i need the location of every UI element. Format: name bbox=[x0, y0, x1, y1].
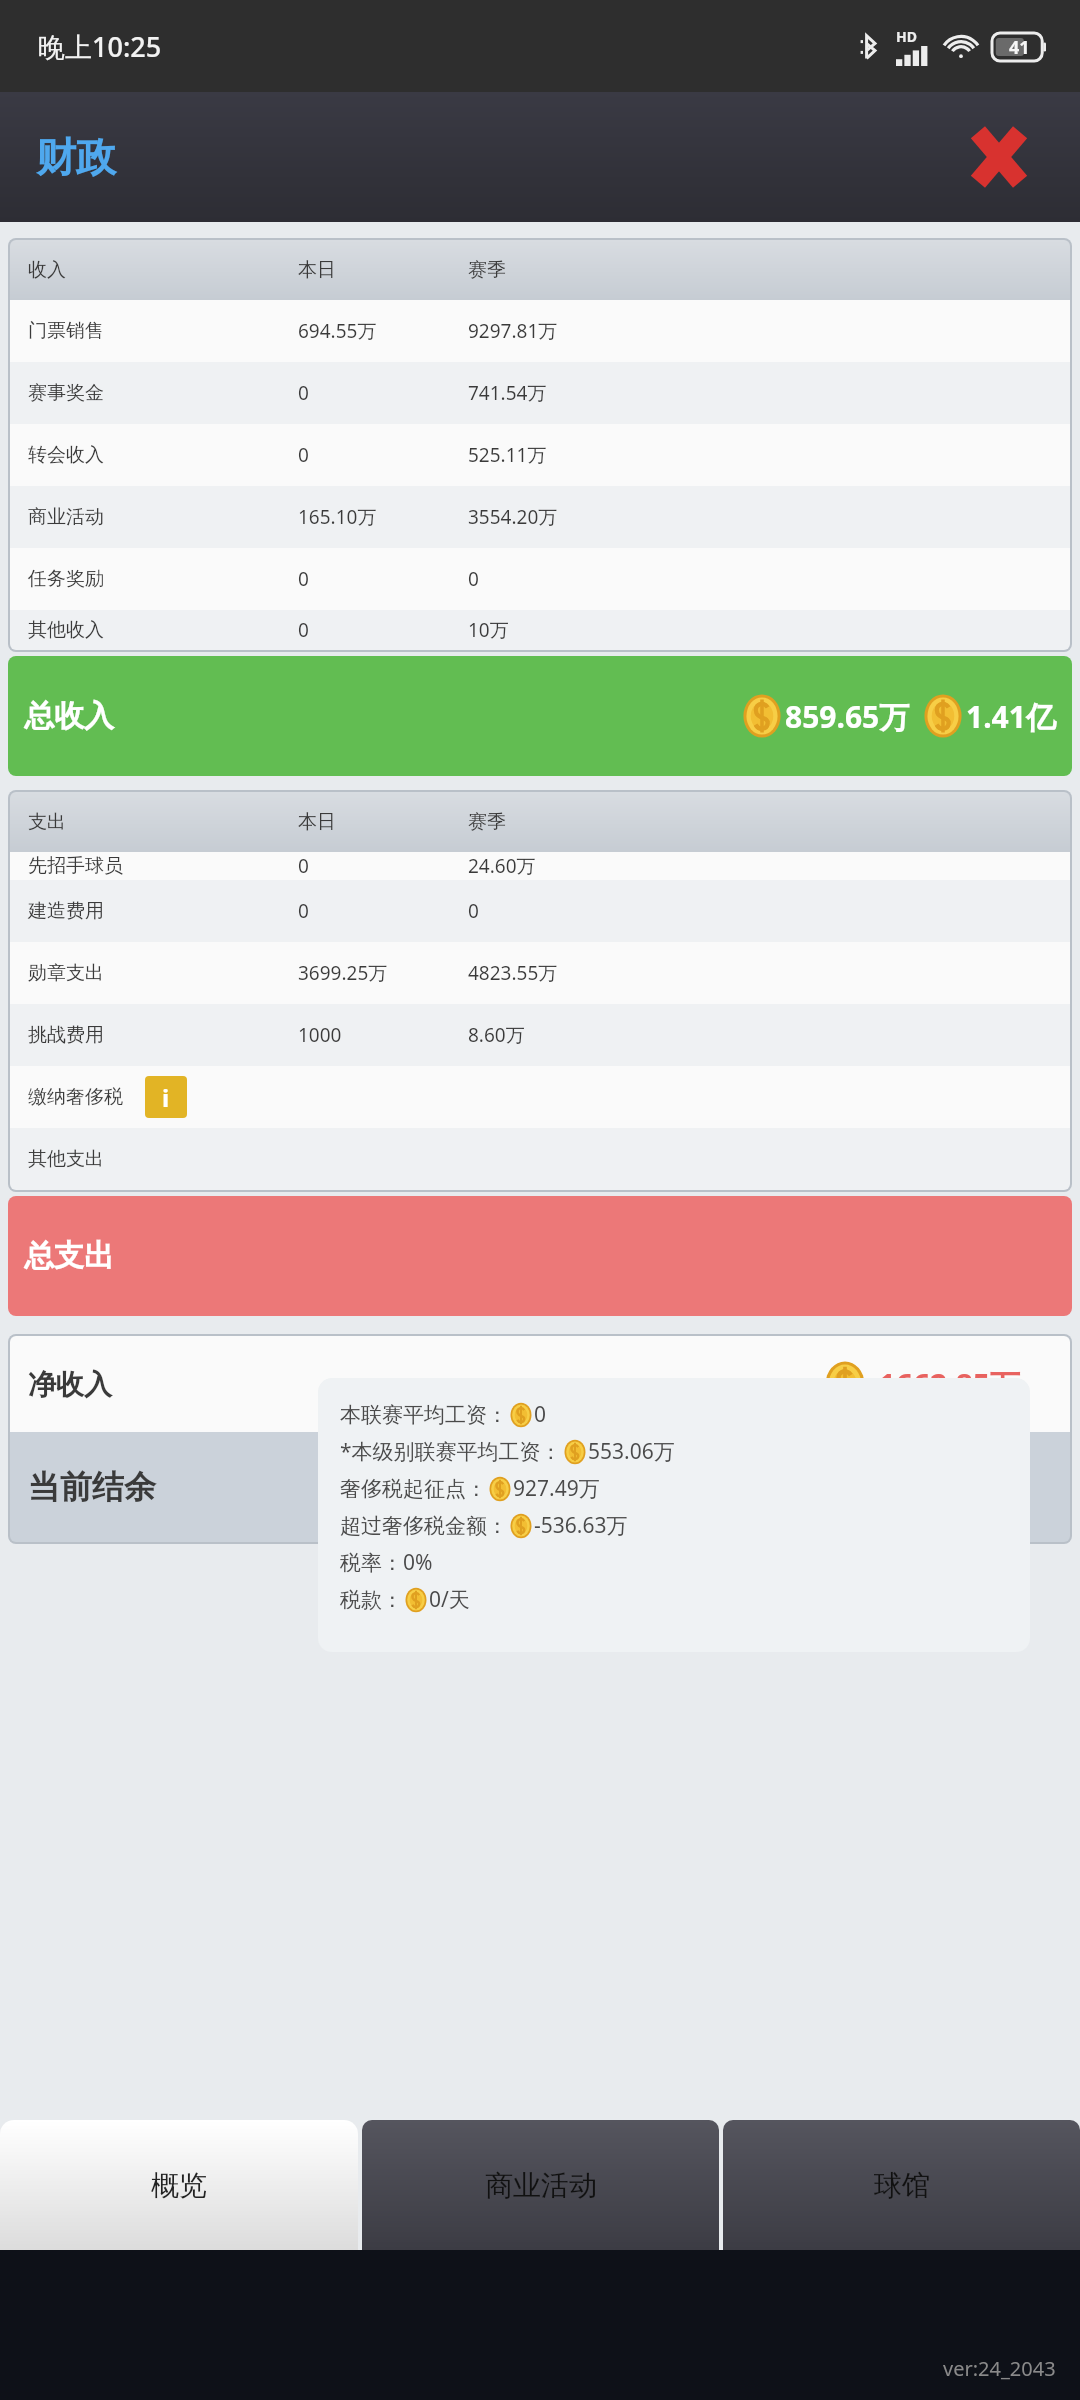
staticText: 0 bbox=[468, 898, 479, 924]
button[interactable]: 勋章支出 bbox=[10, 942, 1070, 1004]
staticText: 缴纳奢侈税 bbox=[28, 1085, 123, 1109]
staticText: *本级别联赛平均工资： bbox=[340, 1437, 562, 1466]
staticText: ver:24_2043 bbox=[943, 2355, 1056, 2382]
staticText: 本日 bbox=[298, 258, 468, 282]
staticText: 当前结余 bbox=[28, 1467, 156, 1507]
staticText: 9297.81万 bbox=[468, 318, 558, 344]
staticText: 商业活动 bbox=[485, 2168, 597, 2203]
staticText: 建造费用 bbox=[28, 899, 104, 923]
button[interactable]: 其他收入 bbox=[10, 610, 1070, 650]
staticText: 赛季 bbox=[468, 810, 506, 834]
staticText: 0 bbox=[298, 380, 468, 406]
staticText: 商业活动 bbox=[28, 505, 104, 529]
staticText: 8.60万 bbox=[468, 1022, 525, 1048]
staticText: 本日 bbox=[298, 810, 468, 834]
staticText: 总支出 bbox=[24, 1237, 114, 1275]
staticText: 165.10万 bbox=[298, 504, 468, 530]
button[interactable]: 净收入 bbox=[10, 1336, 1070, 1432]
button[interactable]: 赛事奖金 bbox=[10, 362, 1070, 424]
staticText: 税率：0% bbox=[340, 1548, 433, 1577]
staticText: 勋章支出 bbox=[28, 961, 104, 985]
staticText: 3699.25万 bbox=[298, 960, 468, 986]
staticText: 0 bbox=[298, 853, 468, 879]
button[interactable]: 总支出 bbox=[8, 1196, 1072, 1316]
staticText: 0 bbox=[468, 566, 479, 592]
staticText: 0/天 bbox=[429, 1585, 470, 1614]
button[interactable]: 概览 bbox=[0, 2120, 358, 2250]
button[interactable]: 缴纳奢侈税 bbox=[10, 1066, 1070, 1128]
staticText: 0 bbox=[534, 1400, 547, 1429]
staticText: 0 bbox=[298, 898, 468, 924]
staticText: 41 bbox=[1009, 35, 1030, 60]
button[interactable]: 关闭 bbox=[960, 118, 1038, 196]
staticText: 总收入 bbox=[24, 697, 114, 735]
staticText: 859.65万 bbox=[785, 696, 910, 737]
staticText: 赛事奖金 bbox=[28, 381, 104, 405]
staticText: 553.06万 bbox=[588, 1437, 675, 1466]
button[interactable]: 门票销售 bbox=[10, 300, 1070, 362]
staticText: 0 bbox=[298, 442, 468, 468]
staticText: 奢侈税起征点： bbox=[340, 1476, 487, 1502]
staticText: 1000 bbox=[298, 1022, 468, 1048]
staticText: 概览 bbox=[151, 2168, 207, 2203]
staticText: 1.41亿 bbox=[966, 696, 1056, 737]
staticText: -1662.85万 bbox=[869, 1364, 1020, 1405]
staticText: 24.60万 bbox=[468, 853, 536, 879]
staticText: 门票销售 bbox=[28, 319, 104, 343]
button[interactable]: 商业活动 bbox=[362, 2120, 719, 2250]
staticText: 0 bbox=[298, 617, 468, 643]
staticText: 10万 bbox=[468, 617, 509, 643]
button[interactable]: 当前结余 bbox=[10, 1432, 1070, 1542]
staticText: 任务奖励 bbox=[28, 567, 104, 591]
staticText: 挑战费用 bbox=[28, 1023, 104, 1047]
staticText: 本联赛平均工资： bbox=[340, 1402, 508, 1428]
staticText: 赛季 bbox=[468, 258, 506, 282]
staticText: 0 bbox=[298, 566, 468, 592]
staticText: HD bbox=[896, 27, 917, 46]
button[interactable]: 先招手球员 bbox=[10, 852, 1070, 880]
staticText: 超过奢侈税金额： bbox=[340, 1513, 508, 1539]
staticText: 694.55万 bbox=[298, 318, 468, 344]
staticText: 525.11万 bbox=[468, 442, 547, 468]
staticText: 晚上10:25 bbox=[38, 28, 162, 65]
staticText: 927.49万 bbox=[513, 1474, 600, 1503]
staticText: 其他支出 bbox=[28, 1147, 104, 1171]
staticText: 支出 bbox=[28, 810, 298, 834]
button[interactable]: 建造费用 bbox=[10, 880, 1070, 942]
staticText: 其他收入 bbox=[28, 618, 104, 642]
button[interactable]: 挑战费用 bbox=[10, 1004, 1070, 1066]
staticText: 741.54万 bbox=[468, 380, 547, 406]
button[interactable]: 任务奖励 bbox=[10, 548, 1070, 610]
staticText: 先招手球员 bbox=[28, 854, 123, 878]
staticText: 收入 bbox=[28, 258, 298, 282]
staticText: i bbox=[162, 1081, 170, 1114]
button[interactable]: 总收入 bbox=[8, 656, 1072, 776]
button[interactable]: 信息 bbox=[145, 1076, 187, 1118]
staticText: -536.63万 bbox=[534, 1511, 628, 1540]
staticText: 球馆 bbox=[874, 2168, 930, 2203]
button[interactable]: 转会收入 bbox=[10, 424, 1070, 486]
staticText: 净收入 bbox=[28, 1367, 112, 1402]
button[interactable]: 商业活动 bbox=[10, 486, 1070, 548]
staticText: 4823.55万 bbox=[468, 960, 558, 986]
button[interactable]: 其他支出 bbox=[10, 1128, 1070, 1190]
staticText: 3554.20万 bbox=[468, 504, 558, 530]
staticText: 税款： bbox=[340, 1587, 403, 1613]
staticText: 财政 bbox=[36, 132, 116, 182]
button[interactable]: 球馆 bbox=[723, 2120, 1080, 2250]
staticText: 转会收入 bbox=[28, 443, 104, 467]
